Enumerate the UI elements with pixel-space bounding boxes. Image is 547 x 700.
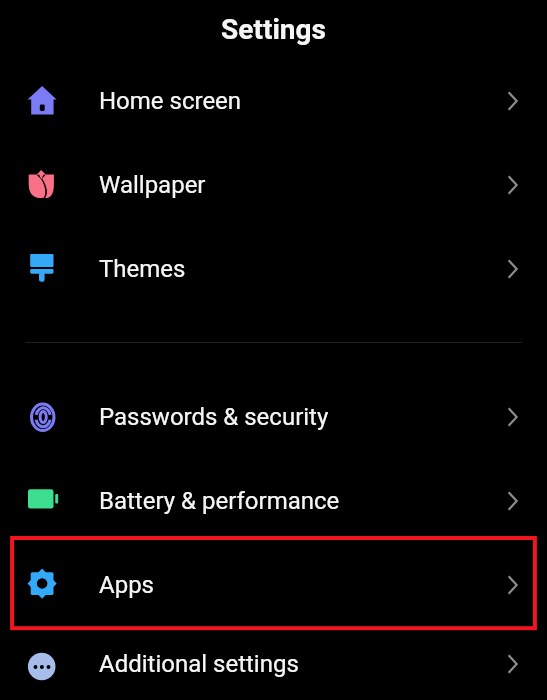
button[interactable]: Wallpaper <box>0 143 547 227</box>
button[interactable]: Additional settings <box>0 627 547 700</box>
staticText: Additional settings <box>99 650 299 678</box>
button[interactable]: Home screen <box>0 59 547 143</box>
button[interactable]: Passwords & security <box>0 375 547 459</box>
staticText: Settings <box>221 13 326 46</box>
staticText: Passwords & security <box>99 403 329 431</box>
button[interactable]: Themes <box>0 227 547 311</box>
button[interactable]: Apps <box>0 543 547 627</box>
staticText: Apps <box>99 571 154 599</box>
staticText: Themes <box>99 255 186 283</box>
button[interactable]: Battery & performance <box>0 459 547 543</box>
staticText: Battery & performance <box>99 487 340 515</box>
staticText: Home screen <box>99 87 242 115</box>
staticText: Wallpaper <box>99 171 206 199</box>
